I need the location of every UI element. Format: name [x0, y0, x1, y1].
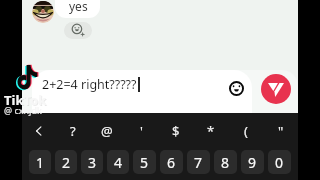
button[interactable]: 9	[241, 150, 264, 174]
button[interactable]: Emoji	[228, 80, 245, 97]
staticText: '	[140, 122, 143, 140]
button[interactable]: '	[124, 113, 158, 148]
staticText: 3	[88, 153, 97, 172]
staticText: 5	[140, 153, 149, 172]
staticText: 9	[248, 153, 257, 172]
staticText: (	[244, 122, 248, 140]
button[interactable]: Add reaction	[64, 22, 92, 39]
staticText: 2+2=4 right?????	[42, 76, 137, 93]
button[interactable]: yes	[55, 0, 100, 18]
staticText: @ cxhjdk	[4, 104, 42, 116]
staticText: 7	[194, 153, 203, 172]
staticText: 0	[275, 153, 284, 172]
staticText: 6	[167, 153, 176, 172]
button[interactable]: Send	[261, 74, 291, 104]
button[interactable]: 5	[133, 150, 156, 174]
button[interactable]: 3	[81, 150, 103, 174]
staticText: 4	[114, 153, 123, 172]
button[interactable]: (	[228, 113, 263, 148]
button[interactable]: 8	[214, 150, 237, 174]
staticText: *	[207, 122, 215, 140]
staticText: 2	[62, 153, 71, 172]
button[interactable]: 7	[187, 150, 210, 174]
button[interactable]: "	[263, 113, 298, 148]
staticText: "	[278, 122, 284, 140]
staticText: TikTok	[5, 92, 48, 110]
staticText: yes	[69, 0, 88, 14]
button[interactable]: ?	[56, 113, 90, 148]
button[interactable]: 1	[29, 150, 51, 174]
button[interactable]: Previous	[22, 113, 56, 148]
button[interactable]: 6	[160, 150, 183, 174]
staticText: @ cxhjdk	[4, 104, 42, 116]
staticText: $	[172, 122, 180, 140]
staticText: TikTok	[4, 91, 47, 109]
staticText: ?	[70, 122, 76, 140]
button[interactable]: @	[90, 113, 124, 148]
button[interactable]: 2	[55, 150, 77, 174]
staticText: 1	[36, 153, 45, 172]
button[interactable]: $	[158, 113, 193, 148]
button[interactable]: *	[193, 113, 228, 148]
button[interactable]: 4	[107, 150, 129, 174]
button[interactable]: 2+2=4 right?????	[32, 70, 252, 113]
staticText: 8	[221, 153, 230, 172]
button[interactable]: 0	[268, 150, 291, 174]
staticText: @	[101, 122, 113, 140]
